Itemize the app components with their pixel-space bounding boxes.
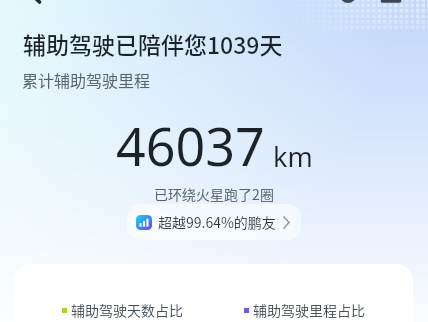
staticText: 辅助驾驶里程占比 [253, 300, 365, 320]
staticText: km [273, 138, 313, 175]
button[interactable]: 超越99.64%的鹏友 [127, 204, 301, 240]
staticText: 超越99.64%的鹏友 [158, 212, 276, 232]
staticText: 辅助驾驶已陪伴您1039天 [23, 27, 283, 60]
button[interactable]: Share [327, 0, 369, 16]
staticText: 累计辅助驾驶里程 [22, 68, 151, 91]
staticText: 已环绕火星跑了2圈 [0, 184, 428, 204]
button[interactable]: Close [370, 0, 412, 22]
staticText: 辅助驾驶天数占比 [71, 300, 183, 320]
button[interactable]: Back [13, 0, 55, 13]
staticText: 46037 [116, 110, 265, 181]
